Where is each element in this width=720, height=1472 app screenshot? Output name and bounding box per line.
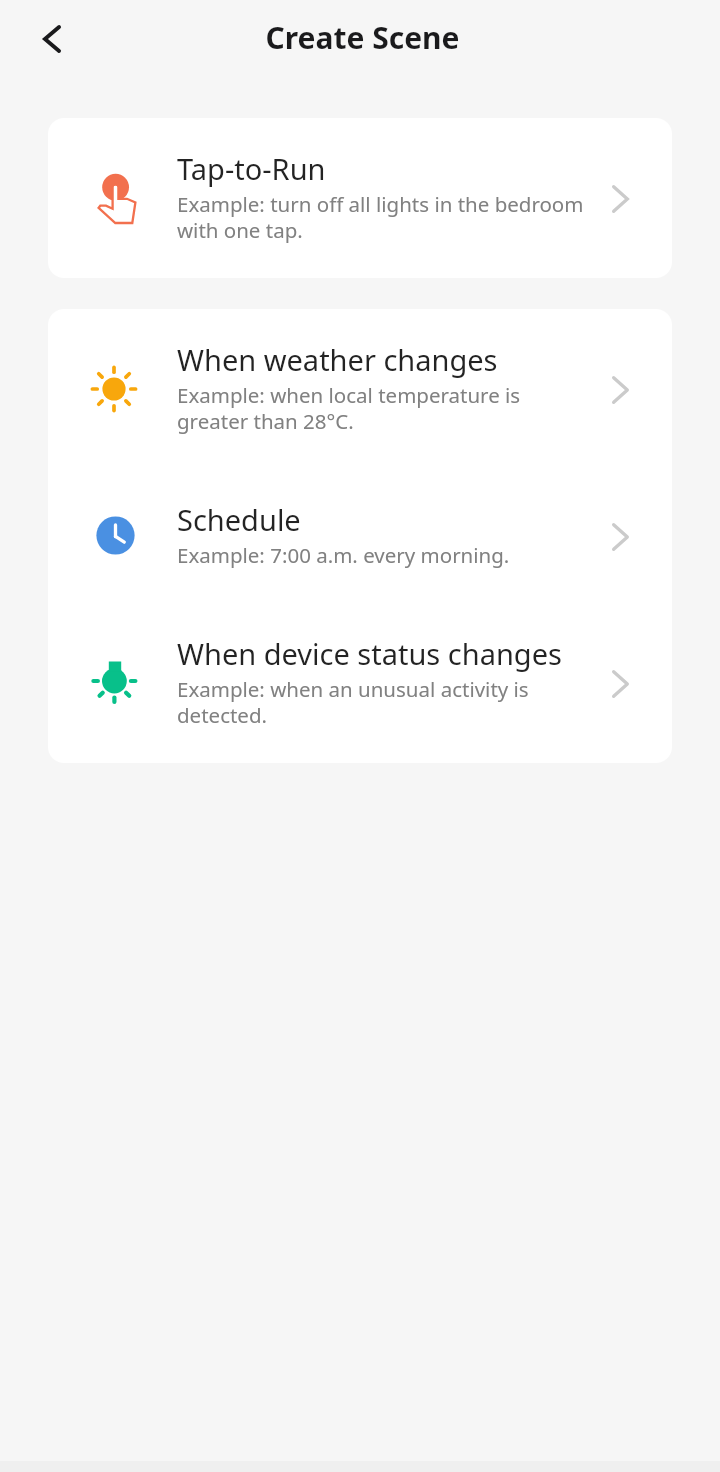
staticText: Example: turn off all lights in the bedr… [177,190,592,244]
staticText: Schedule [177,500,301,539]
staticText: When weather changes [177,340,498,379]
button[interactable]: Schedule [48,469,672,603]
button[interactable]: When device status changes [48,603,672,763]
other: Open [612,523,629,551]
button[interactable]: When weather changes [48,309,672,469]
staticText: When device status changes [177,634,562,673]
staticText: Example: 7:00 a.m. every morning. [177,541,510,569]
staticText: Example: when an unusual activity is det… [177,675,592,729]
button[interactable]: Back [24,12,80,68]
other: Open [612,670,629,698]
other: Open [612,185,629,213]
button[interactable]: Tap-to-Run [48,118,672,278]
staticText: Example: when local temperature is great… [177,381,592,435]
staticText: Tap-to-Run [177,149,326,188]
staticText: Create Scene [265,17,460,58]
other: Open [612,376,629,404]
